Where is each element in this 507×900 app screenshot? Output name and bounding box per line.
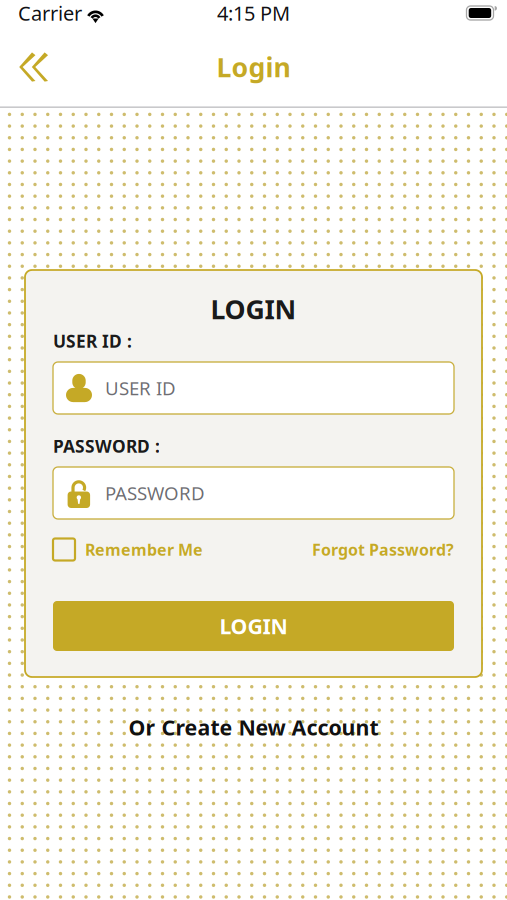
staticText: USER ID : [53,329,132,352]
staticText: LOGIN [219,612,287,640]
staticText: Login [216,49,290,85]
staticText: 4:15 PM [217,0,290,26]
staticText: Carrier [18,0,82,26]
staticText: Or Create New Account [128,713,378,741]
staticText: PASSWORD [105,481,205,505]
button[interactable]: LOGIN [53,601,454,651]
staticText: Forgot Password? [312,539,454,560]
button[interactable]: Forgot Password? [312,539,454,560]
staticText: Remember Me [85,539,203,560]
button[interactable]: Remember Me [53,538,203,560]
staticText: LOGIN [210,291,296,327]
staticText: PASSWORD : [53,434,160,457]
button[interactable]: Back [0,41,57,93]
staticText: USER ID [105,376,176,400]
